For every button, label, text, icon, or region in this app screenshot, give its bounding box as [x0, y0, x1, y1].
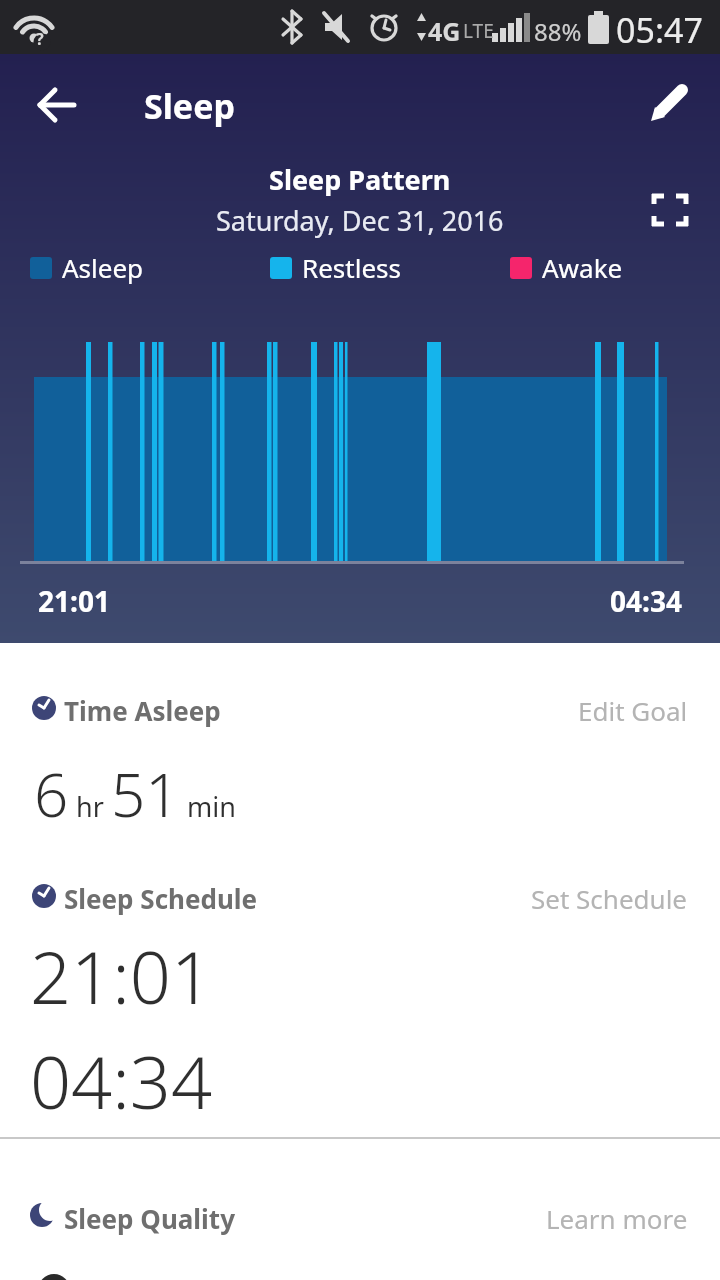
staticText: Sleep Schedule — [64, 881, 258, 916]
staticText: 88% — [534, 15, 582, 48]
staticText: min — [180, 788, 236, 825]
staticText: Asleep — [62, 250, 144, 285]
staticText: Sleep Pattern — [269, 161, 451, 198]
button[interactable]: Learn more — [546, 1201, 688, 1236]
staticText: Sleep Quality — [64, 1201, 236, 1236]
button[interactable] — [644, 80, 694, 130]
staticText: Sleep — [144, 83, 235, 129]
button[interactable]: Set Schedule — [531, 881, 688, 916]
staticText: Restless — [302, 250, 401, 285]
button[interactable] — [30, 78, 84, 132]
staticText: Awake — [542, 250, 623, 285]
staticText: 04:34 — [610, 582, 682, 620]
staticText: 21:01 — [30, 927, 213, 1025]
staticText: 51 — [111, 753, 180, 835]
staticText: 6 — [34, 753, 69, 835]
staticText: 21:01 — [38, 582, 110, 620]
button[interactable] — [650, 190, 692, 232]
staticText: LTE — [463, 18, 494, 44]
staticText: hr — [69, 788, 111, 825]
staticText: Time Asleep — [64, 693, 221, 728]
button[interactable]: Edit Goal — [578, 693, 688, 728]
staticText: 05:47 — [616, 7, 703, 53]
staticText: ? — [36, 28, 44, 50]
staticText: 04:34 — [30, 1032, 213, 1130]
staticText: Saturday, Dec 31, 2016 — [216, 202, 504, 239]
staticText: 4G — [428, 14, 461, 48]
